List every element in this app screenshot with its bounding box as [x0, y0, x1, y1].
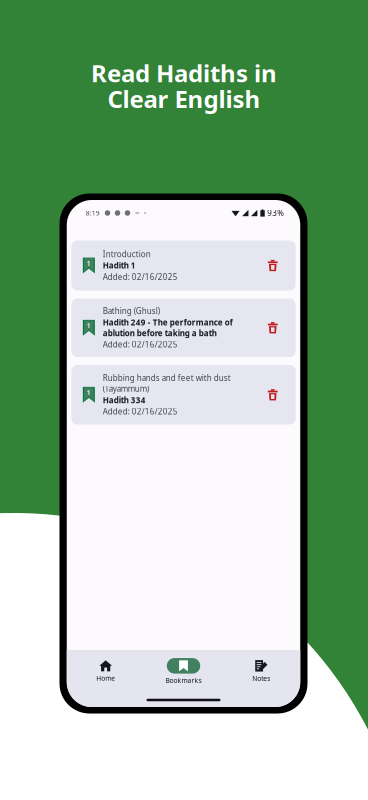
staticText: Added: 02/16/2025 — [103, 272, 178, 282]
staticText: Read Hadiths in — [91, 57, 277, 89]
staticText: Home — [96, 674, 115, 683]
button[interactable]: 1 — [71, 365, 296, 424]
staticText: Introduction — [103, 249, 151, 259]
staticText: 8:19 — [86, 209, 100, 217]
staticText: Hadith 1 — [103, 260, 136, 271]
staticText: Bathing (Ghusl) — [103, 306, 160, 316]
button[interactable]: Notes — [222, 660, 300, 683]
button[interactable]: 1 — [71, 240, 296, 290]
staticText: 1 — [87, 259, 91, 268]
button[interactable]: 1 — [71, 298, 296, 357]
staticText: 1 — [87, 321, 91, 330]
staticText: Hadith 249 - The performance of ablution… — [103, 317, 233, 338]
staticText: Added: 02/16/2025 — [103, 406, 178, 417]
staticText: Clear English — [107, 83, 260, 115]
staticText: Added: 02/16/2025 — [103, 339, 178, 350]
button[interactable]: Home — [67, 660, 145, 683]
staticText: 93% — [267, 208, 284, 218]
staticText: Rubbing hands and feet with dust (Tayamm… — [103, 373, 231, 394]
staticText: Bookmarks — [165, 676, 201, 685]
button[interactable]: Bookmarks — [145, 658, 222, 685]
staticText: Notes — [252, 674, 270, 683]
staticText: 1 — [87, 388, 91, 397]
staticText: Hadith 334 — [103, 395, 146, 405]
